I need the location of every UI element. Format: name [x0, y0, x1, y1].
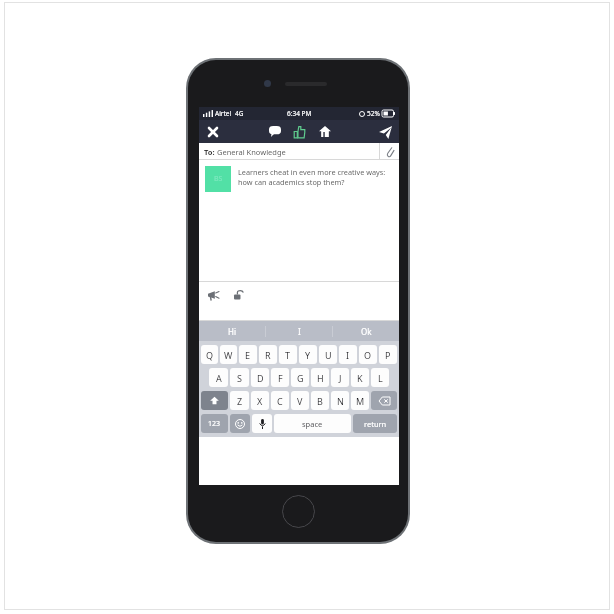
staticText: N	[337, 395, 344, 407]
staticText: V	[297, 395, 303, 407]
staticText: A	[216, 372, 222, 384]
staticText: 123	[208, 419, 221, 429]
button[interactable]: H	[311, 368, 329, 387]
button[interactable]: C	[271, 391, 289, 410]
staticText: 4G	[235, 109, 244, 118]
button[interactable]: Ok	[333, 321, 399, 341]
staticText: I	[298, 326, 301, 337]
staticText: BS	[214, 174, 223, 184]
staticText: Q	[206, 349, 214, 361]
staticText: R	[265, 349, 271, 361]
staticText: Learners cheat in even more creative way…	[238, 167, 393, 187]
button[interactable]: Announce	[205, 287, 221, 303]
button[interactable]: return	[353, 414, 397, 433]
staticText: T	[285, 349, 291, 361]
button[interactable]: Z	[230, 391, 249, 410]
staticText: U	[325, 349, 332, 361]
button[interactable]: I	[339, 345, 357, 364]
button[interactable]: Send	[376, 123, 394, 141]
button[interactable]: A	[209, 368, 228, 387]
button[interactable]: G	[291, 368, 309, 387]
button[interactable]: 123	[201, 414, 228, 433]
button[interactable]: S	[230, 368, 249, 387]
button[interactable]: X	[251, 391, 269, 410]
staticText: E	[245, 349, 251, 361]
button[interactable]: Y	[299, 345, 317, 364]
button[interactable]: Emoji	[230, 414, 250, 433]
staticText: K	[357, 372, 363, 384]
button[interactable]: Voice input	[252, 414, 272, 433]
staticText: To:	[204, 147, 217, 157]
staticText: General Knowledge	[217, 147, 286, 157]
staticText: 52%	[367, 109, 380, 118]
staticText: D	[257, 372, 264, 384]
staticText: W	[224, 349, 233, 361]
staticText: I	[346, 349, 350, 361]
staticText: Y	[305, 349, 311, 361]
button[interactable]: V	[291, 391, 309, 410]
staticText: space	[302, 419, 323, 429]
staticText: O	[364, 349, 372, 361]
staticText: P	[385, 349, 391, 361]
staticText: G	[297, 372, 304, 384]
staticText: return	[364, 419, 387, 429]
button[interactable]: Shift	[201, 391, 228, 410]
button[interactable]: R	[259, 345, 277, 364]
staticText: J	[339, 372, 342, 384]
button[interactable]: F	[271, 368, 289, 387]
button[interactable]: U	[319, 345, 337, 364]
staticText: C	[277, 395, 283, 407]
button[interactable]: J	[331, 368, 349, 387]
staticText: S	[237, 372, 242, 384]
button[interactable]: Backspace	[371, 391, 397, 410]
button[interactable]: B	[311, 391, 329, 410]
staticText: H	[317, 372, 324, 384]
button[interactable]: Home	[315, 122, 334, 141]
button[interactable]: I	[266, 321, 332, 341]
staticText: 6:34 PM	[287, 109, 312, 118]
button[interactable]: space	[274, 414, 351, 433]
button[interactable]: T	[279, 345, 297, 364]
staticText: M	[356, 395, 365, 407]
staticText: X	[257, 395, 263, 407]
button[interactable]: Unlock	[230, 287, 246, 303]
button[interactable]: Hi	[199, 321, 265, 341]
button[interactable]: Close	[204, 123, 221, 140]
staticText: F	[278, 372, 283, 384]
staticText: Z	[237, 395, 243, 407]
button[interactable]: Q	[201, 345, 218, 364]
staticText: B	[317, 395, 323, 407]
button[interactable]: D	[251, 368, 269, 387]
staticText: Ok	[361, 326, 372, 337]
button[interactable]: M	[351, 391, 369, 410]
button[interactable]: Like	[290, 122, 309, 141]
button[interactable]: K	[351, 368, 369, 387]
button[interactable]: E	[239, 345, 257, 364]
button[interactable]: Home button	[282, 495, 315, 528]
button[interactable]: W	[220, 345, 237, 364]
button[interactable]: L	[371, 368, 389, 387]
staticText: Airtel	[215, 109, 232, 118]
button[interactable]: Attach	[380, 143, 399, 160]
button[interactable]: N	[331, 391, 349, 410]
button[interactable]: O	[359, 345, 377, 364]
button[interactable]: BS	[205, 166, 393, 192]
staticText: Hi	[228, 326, 236, 337]
button[interactable]: P	[379, 345, 397, 364]
button[interactable]: To:	[199, 143, 399, 160]
button[interactable]: Messages	[265, 122, 284, 141]
staticText: L	[378, 372, 383, 384]
